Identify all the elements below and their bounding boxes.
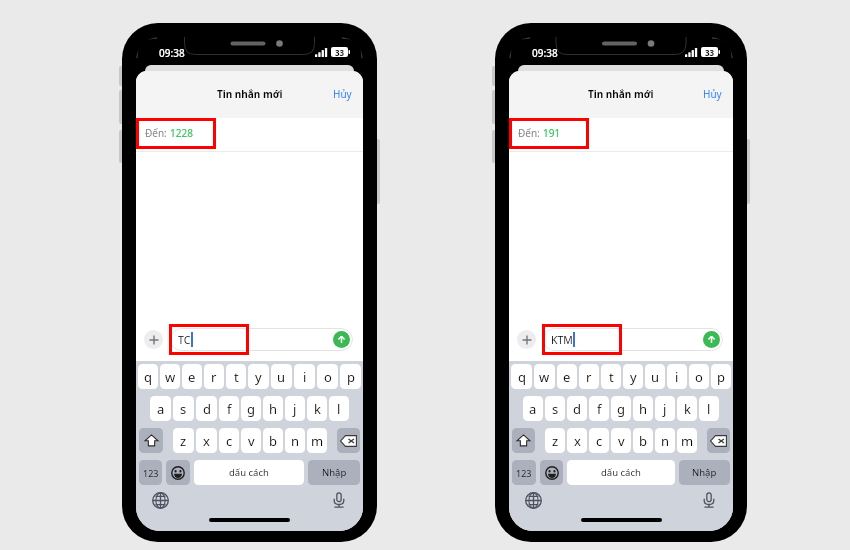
button[interactable]: dấu cách xyxy=(194,460,304,485)
staticText: t xyxy=(234,368,239,386)
staticText: z xyxy=(552,432,559,450)
staticText: Hủy xyxy=(703,87,722,101)
button[interactable]: r xyxy=(204,364,224,389)
button[interactable]: v xyxy=(241,428,261,453)
button[interactable]: a xyxy=(523,396,543,421)
button[interactable]: Shift xyxy=(139,428,163,453)
button[interactable]: y xyxy=(623,364,643,389)
staticText: e xyxy=(563,368,571,386)
button[interactable]: Nhập xyxy=(308,460,360,485)
button[interactable]: Change keyboard xyxy=(152,492,169,509)
button[interactable]: dấu cách xyxy=(567,460,675,485)
button[interactable]: n xyxy=(655,428,675,453)
button[interactable]: f xyxy=(589,396,609,421)
button[interactable]: Shift xyxy=(512,428,535,453)
button[interactable]: l xyxy=(699,396,719,421)
button[interactable]: t xyxy=(226,364,246,389)
button[interactable]: i xyxy=(667,364,687,389)
button[interactable]: g xyxy=(611,396,631,421)
button[interactable]: Dictate xyxy=(703,492,715,508)
staticText: s xyxy=(180,400,187,418)
button[interactable]: v xyxy=(611,428,631,453)
button[interactable]: Numbers xyxy=(512,460,536,485)
button[interactable]: f xyxy=(219,396,239,421)
button[interactable]: Send xyxy=(333,331,350,348)
button[interactable]: t xyxy=(601,364,621,389)
staticText: j xyxy=(663,400,667,418)
button[interactable]: x xyxy=(567,428,587,453)
button[interactable]: n xyxy=(285,428,305,453)
button[interactable]: u xyxy=(645,364,665,389)
button[interactable]: x xyxy=(196,428,217,453)
staticText: dấu cách xyxy=(229,466,269,479)
button[interactable]: s xyxy=(173,396,194,421)
button[interactable]: d xyxy=(196,396,217,421)
button[interactable]: Dictate xyxy=(333,492,345,508)
button[interactable]: a xyxy=(150,396,171,421)
button[interactable]: j xyxy=(655,396,675,421)
button[interactable]: b xyxy=(633,428,653,453)
button[interactable]: w xyxy=(534,364,555,389)
button[interactable]: o xyxy=(317,364,338,389)
button[interactable]: Emoji xyxy=(166,460,190,485)
staticText: r xyxy=(586,368,592,386)
button[interactable]: Emoji xyxy=(540,460,563,485)
staticText: u xyxy=(277,368,286,386)
button[interactable]: u xyxy=(271,364,292,389)
staticText: 123 xyxy=(143,467,159,479)
button[interactable]: e xyxy=(182,364,202,389)
button[interactable]: r xyxy=(579,364,599,389)
staticText: Nhập xyxy=(692,466,717,479)
button[interactable]: y xyxy=(248,364,269,389)
button[interactable]: Numbers xyxy=(139,460,162,485)
button[interactable]: p xyxy=(340,364,361,389)
button[interactable]: g xyxy=(241,396,261,421)
staticText: c xyxy=(596,432,603,450)
button[interactable]: c xyxy=(589,428,609,453)
button[interactable]: p xyxy=(711,364,731,389)
button[interactable]: l xyxy=(329,396,349,421)
button[interactable]: w xyxy=(160,364,180,389)
staticText: y xyxy=(255,368,262,386)
button[interactable]: b xyxy=(263,428,283,453)
button[interactable]: Hủy xyxy=(694,79,733,109)
button[interactable]: z xyxy=(173,428,194,453)
button[interactable]: j xyxy=(285,396,305,421)
button[interactable]: Backspace xyxy=(337,428,360,453)
button[interactable]: e xyxy=(557,364,577,389)
button[interactable]: i xyxy=(294,364,315,389)
button[interactable]: s xyxy=(545,396,565,421)
staticText: d xyxy=(203,400,211,418)
button[interactable]: Backspace xyxy=(707,428,730,453)
button[interactable]: Đến: xyxy=(136,118,363,151)
button[interactable]: Add attachment xyxy=(144,330,163,349)
button[interactable]: Đến: xyxy=(509,118,733,151)
staticText: d xyxy=(573,400,581,418)
button[interactable]: k xyxy=(307,396,327,421)
button[interactable]: h xyxy=(633,396,653,421)
button[interactable]: Hủy xyxy=(324,79,363,109)
staticText: s xyxy=(552,400,559,418)
staticText: i xyxy=(303,368,307,386)
button[interactable]: Add attachment xyxy=(517,330,536,349)
button[interactable]: m xyxy=(307,428,327,453)
button[interactable]: Nhập xyxy=(679,460,730,485)
button[interactable]: k xyxy=(677,396,697,421)
button[interactable]: d xyxy=(567,396,587,421)
button[interactable]: q xyxy=(138,364,158,389)
button[interactable]: c xyxy=(219,428,239,453)
staticText: Nhập xyxy=(322,466,347,479)
staticText: u xyxy=(651,368,660,386)
button[interactable]: Send xyxy=(703,331,720,348)
button[interactable]: o xyxy=(689,364,709,389)
button[interactable]: h xyxy=(263,396,283,421)
button[interactable]: m xyxy=(677,428,697,453)
staticText: Đến: xyxy=(518,126,540,140)
button[interactable]: z xyxy=(545,428,565,453)
staticText: f xyxy=(227,400,232,418)
staticText: r xyxy=(211,368,217,386)
button[interactable]: q xyxy=(511,364,532,389)
staticText: x xyxy=(574,432,581,450)
button[interactable]: Change keyboard xyxy=(525,492,542,509)
staticText: KTM xyxy=(551,333,573,347)
